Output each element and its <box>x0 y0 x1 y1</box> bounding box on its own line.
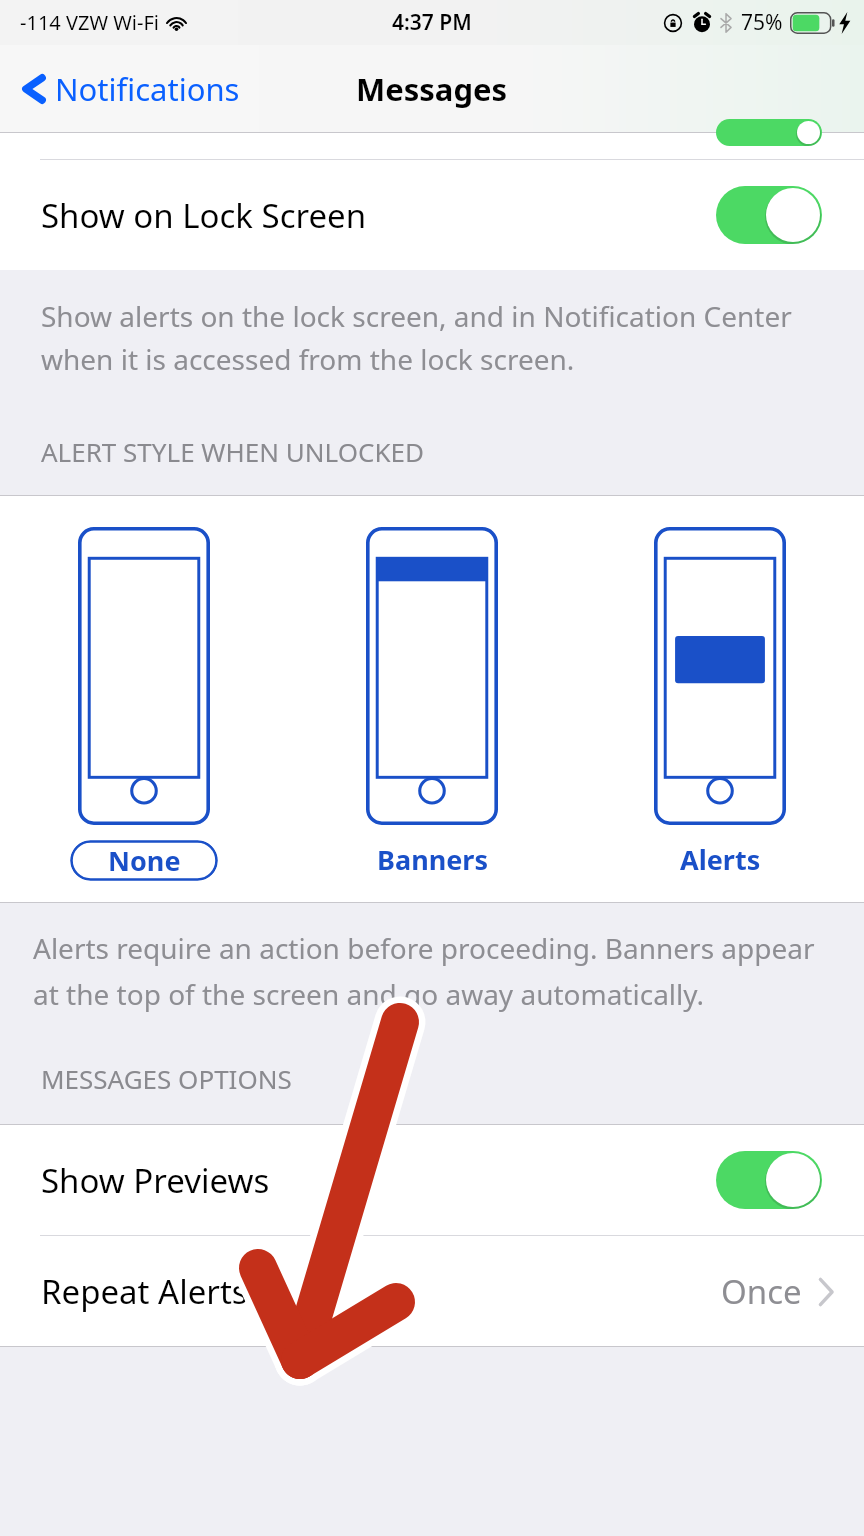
button[interactable]: None <box>0 527 288 882</box>
staticText: -114 VZW Wi-Fi <box>20 9 159 36</box>
button[interactable]: Show on Lock Screen <box>0 160 864 270</box>
staticText: Repeat Alerts <box>41 1269 248 1314</box>
button[interactable]: Alerts <box>576 527 864 880</box>
staticText: None <box>108 842 181 879</box>
staticText: Notifications <box>55 68 240 110</box>
staticText: Show on Lock Screen <box>41 193 367 238</box>
staticText: Show alerts on the lock screen, and in N… <box>41 297 824 378</box>
staticText: MESSAGES OPTIONS <box>41 1061 292 1096</box>
button[interactable]: Show Previews <box>0 1125 864 1235</box>
button[interactable]: Toggle on <box>716 1151 822 1209</box>
button[interactable]: Toggle on <box>716 186 822 244</box>
staticText: 4:37 PM <box>392 8 472 37</box>
button[interactable]: Banners <box>288 527 576 880</box>
staticText: Alerts <box>680 841 761 878</box>
staticText: 75% <box>741 8 783 37</box>
button[interactable]: Toggle on <box>716 119 822 146</box>
staticText: Banners <box>377 841 488 878</box>
staticText: Show Previews <box>41 1158 270 1203</box>
button[interactable]: Notifications <box>0 60 254 118</box>
staticText: Alerts require an action before proceedi… <box>33 929 834 1013</box>
staticText: Messages <box>356 68 508 110</box>
staticText: Once <box>721 1269 802 1314</box>
button[interactable]: Repeat Alerts <box>0 1236 864 1346</box>
staticText: ALERT STYLE WHEN UNLOCKED <box>41 434 424 469</box>
